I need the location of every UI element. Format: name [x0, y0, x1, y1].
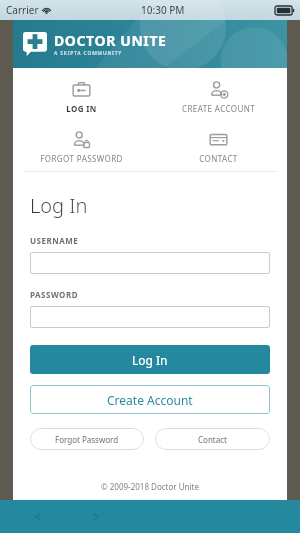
button[interactable]: Log In [30, 345, 270, 374]
staticText: CREATE ACCOUNT [182, 103, 255, 114]
staticText: USERNAME [30, 235, 79, 246]
button[interactable] [30, 252, 270, 274]
staticText: CONTACT [199, 153, 238, 164]
button[interactable]: CREATE ACCOUNT [150, 78, 287, 116]
staticText: DOCTOR UNITE [54, 31, 167, 50]
staticText: Log In [132, 352, 168, 368]
staticText: © 2009-2018 Doctor Unite [13, 481, 287, 492]
staticText: Create Account [107, 392, 193, 408]
button[interactable]: CONTACT [150, 128, 287, 166]
button[interactable]: Contact [155, 428, 270, 450]
staticText: Contact [198, 434, 227, 445]
staticText: 10:30 PM [141, 3, 185, 17]
staticText: LOG IN [66, 103, 97, 114]
staticText: PASSWORD [30, 289, 79, 300]
staticText: A SKIPTA COMMUNITY [54, 50, 122, 57]
button[interactable]: Forgot Password [30, 428, 144, 450]
button[interactable]: FORGOT PASSWORD [13, 128, 150, 166]
button[interactable]: Create Account [30, 385, 270, 414]
button[interactable]: LOG IN [13, 78, 150, 116]
staticText: Forgot Password [55, 434, 119, 445]
staticText: Carrier [6, 3, 39, 17]
staticText: Log In [30, 192, 88, 219]
staticText: FORGOT PASSWORD [40, 153, 123, 164]
button[interactable] [30, 306, 270, 328]
